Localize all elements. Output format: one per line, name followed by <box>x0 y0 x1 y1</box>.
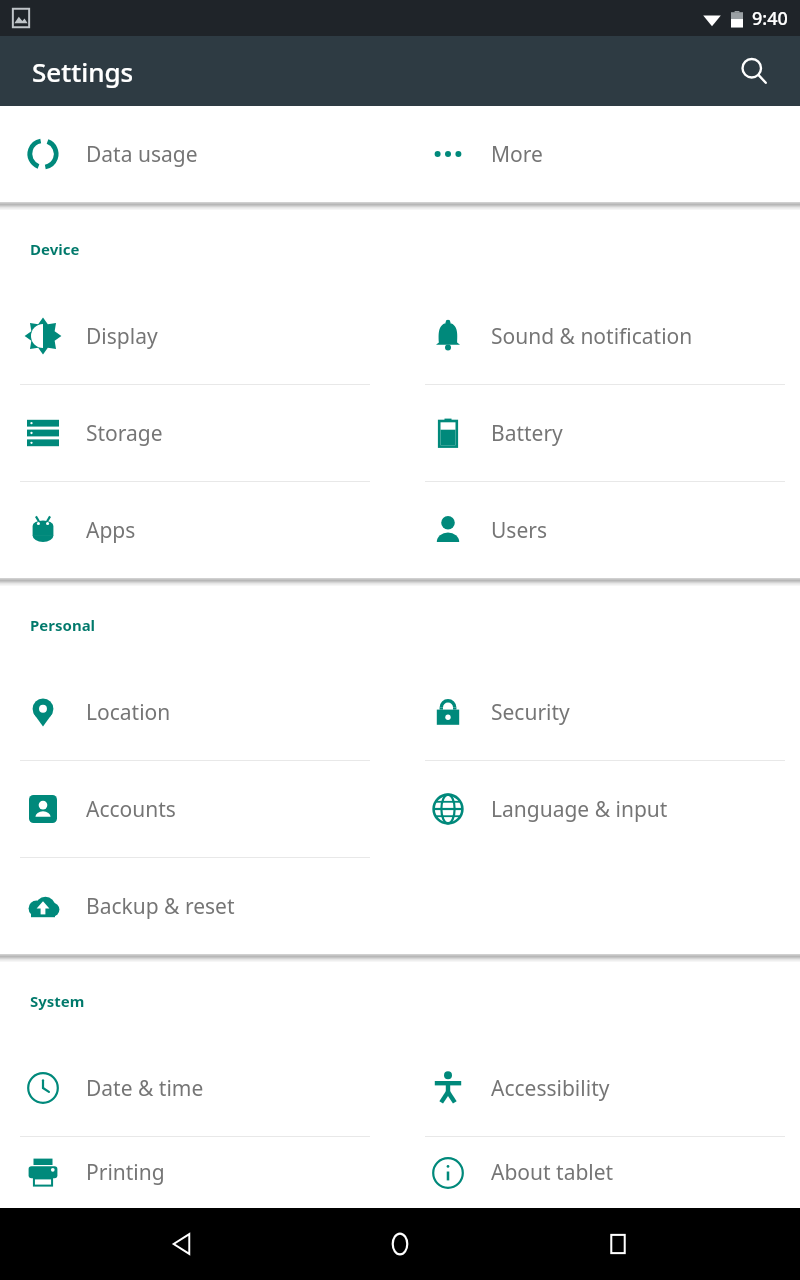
button[interactable]: Accessibility <box>405 1040 800 1136</box>
staticText: Display <box>86 322 158 351</box>
staticText: Device <box>30 239 80 259</box>
staticText: System <box>30 991 85 1011</box>
staticText: Data usage <box>86 140 198 169</box>
staticText: Security <box>491 698 570 727</box>
button[interactable]: Display <box>0 288 385 384</box>
button[interactable]: Recent apps <box>582 1208 654 1280</box>
staticText: Personal <box>30 615 96 635</box>
button[interactable]: Back <box>146 1208 218 1280</box>
button[interactable]: Accounts <box>0 761 385 857</box>
button[interactable]: Battery <box>405 385 800 481</box>
button[interactable]: Backup & reset <box>0 858 385 954</box>
button[interactable]: Apps <box>0 482 385 578</box>
staticText: Date & time <box>86 1074 204 1103</box>
staticText: Accounts <box>86 795 176 824</box>
staticText: Accessibility <box>491 1074 610 1103</box>
button[interactable]: Printing <box>0 1137 385 1208</box>
staticText: Printing <box>86 1158 165 1187</box>
staticText: 9:40 <box>752 6 788 31</box>
button[interactable]: Data usage <box>0 106 385 202</box>
button[interactable]: Language & input <box>405 761 800 857</box>
button[interactable]: More <box>405 106 800 202</box>
button[interactable]: Users <box>405 482 800 578</box>
staticText: Location <box>86 698 171 727</box>
staticText: Sound & notification <box>491 322 693 351</box>
button[interactable]: Date & time <box>0 1040 385 1136</box>
button[interactable]: Sound & notification <box>405 288 800 384</box>
staticText: Storage <box>86 419 163 448</box>
button[interactable]: Search <box>728 45 780 97</box>
staticText: More <box>491 140 543 169</box>
staticText: Users <box>491 516 547 545</box>
staticText: Settings <box>32 54 134 89</box>
button[interactable]: Location <box>0 664 385 760</box>
button[interactable]: Storage <box>0 385 385 481</box>
button[interactable]: Security <box>405 664 800 760</box>
staticText: Language & input <box>491 795 668 824</box>
button[interactable]: About tablet <box>405 1137 800 1208</box>
staticText: Backup & reset <box>86 892 235 921</box>
staticText: Apps <box>86 516 136 545</box>
staticText: About tablet <box>491 1158 614 1187</box>
staticText: Battery <box>491 419 563 448</box>
button[interactable]: Home <box>364 1208 436 1280</box>
